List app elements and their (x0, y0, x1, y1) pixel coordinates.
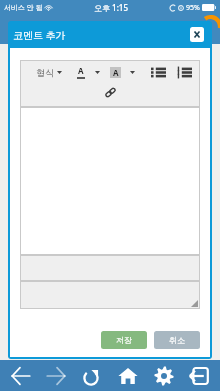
staticText: A (78, 65, 84, 76)
button[interactable]: A (110, 67, 135, 78)
button[interactable]: 뒤로 (6, 360, 36, 391)
button[interactable]: A (77, 65, 100, 79)
button[interactable]: 앞으로 (41, 360, 71, 391)
button[interactable]: 링크 (104, 86, 117, 99)
staticText: 저장 (116, 335, 132, 345)
button[interactable]: 새로 고침 (77, 360, 107, 391)
staticText: 형식 (36, 67, 54, 78)
staticText: A (113, 67, 119, 78)
button[interactable]: 글머리 기호 목록 (151, 67, 166, 78)
staticText: 취소 (169, 335, 185, 345)
button[interactable]: 저장 (101, 331, 147, 349)
button[interactable]: 형식 (36, 67, 62, 78)
staticText: 오후 1:15 (94, 2, 128, 13)
button[interactable]: 번호 매기기 목록 (177, 67, 192, 78)
staticText: 코멘트 추가 (13, 28, 66, 42)
button[interactable]: 취소 (154, 331, 200, 349)
button[interactable]: 홈 (113, 360, 143, 391)
staticText: 95% (186, 3, 200, 13)
button[interactable]: 닫기 (190, 27, 204, 42)
staticText: 서비스 안 됨 (4, 3, 43, 13)
button[interactable]: 설정 (149, 360, 179, 391)
button[interactable]: 나가기 (184, 360, 214, 391)
